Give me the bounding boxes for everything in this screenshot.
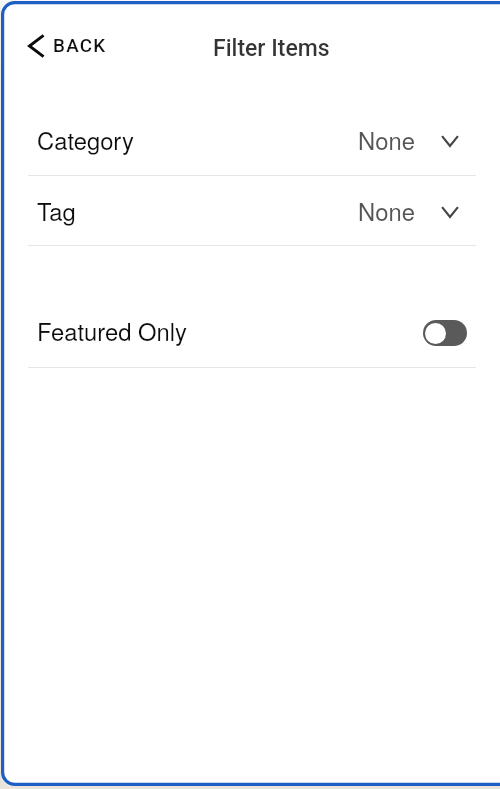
other: Expand Category <box>441 135 459 147</box>
staticText: BACK <box>53 35 107 57</box>
staticText: Filter Items <box>213 35 330 62</box>
staticText: Category <box>37 123 134 157</box>
staticText: None <box>358 123 415 157</box>
button[interactable]: Back <box>23 28 112 64</box>
staticText: None <box>358 194 415 228</box>
button[interactable]: Category <box>1 105 500 175</box>
staticText: Featured Only <box>37 314 187 348</box>
button[interactable]: Tag <box>1 176 500 246</box>
button[interactable]: Featured only toggle, off <box>423 320 467 346</box>
other: Back <box>28 34 45 58</box>
button[interactable]: Featured Only <box>1 296 500 366</box>
other: Expand Tag <box>441 206 459 218</box>
staticText: Tag <box>37 194 76 228</box>
